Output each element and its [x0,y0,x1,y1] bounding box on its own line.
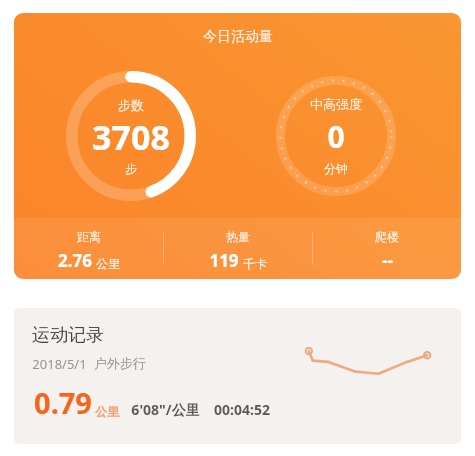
staticText: 运动记录 [32,324,104,347]
staticText: 0.79 [34,383,92,422]
staticText: 119 [209,249,239,272]
staticText: 热量 [226,229,250,244]
staticText: 公里 [95,404,119,419]
staticText: 00:04:52 [214,400,270,419]
staticText: 2.76 [58,249,92,272]
button[interactable]: 运动记录 [14,308,461,444]
staticText: 距离 [77,229,101,244]
staticText: 千卡 [243,256,267,271]
staticText: 步数 [118,97,144,113]
staticText: 步 [125,161,137,176]
staticText: 6'08"/公里 [131,400,200,419]
staticText: 0 [327,116,345,157]
staticText: 今日活动量 [203,28,273,46]
staticText: 分钟 [324,161,348,176]
button[interactable]: 今日活动量 [14,13,461,279]
staticText: -- [382,249,393,272]
staticText: 公里 [96,256,120,271]
staticText: 3708 [92,114,170,160]
staticText: 中高强度 [310,96,362,112]
staticText: 爬楼 [375,229,399,244]
staticText: 户外步行 [94,355,146,371]
staticText: 2018/5/1 [32,355,87,373]
